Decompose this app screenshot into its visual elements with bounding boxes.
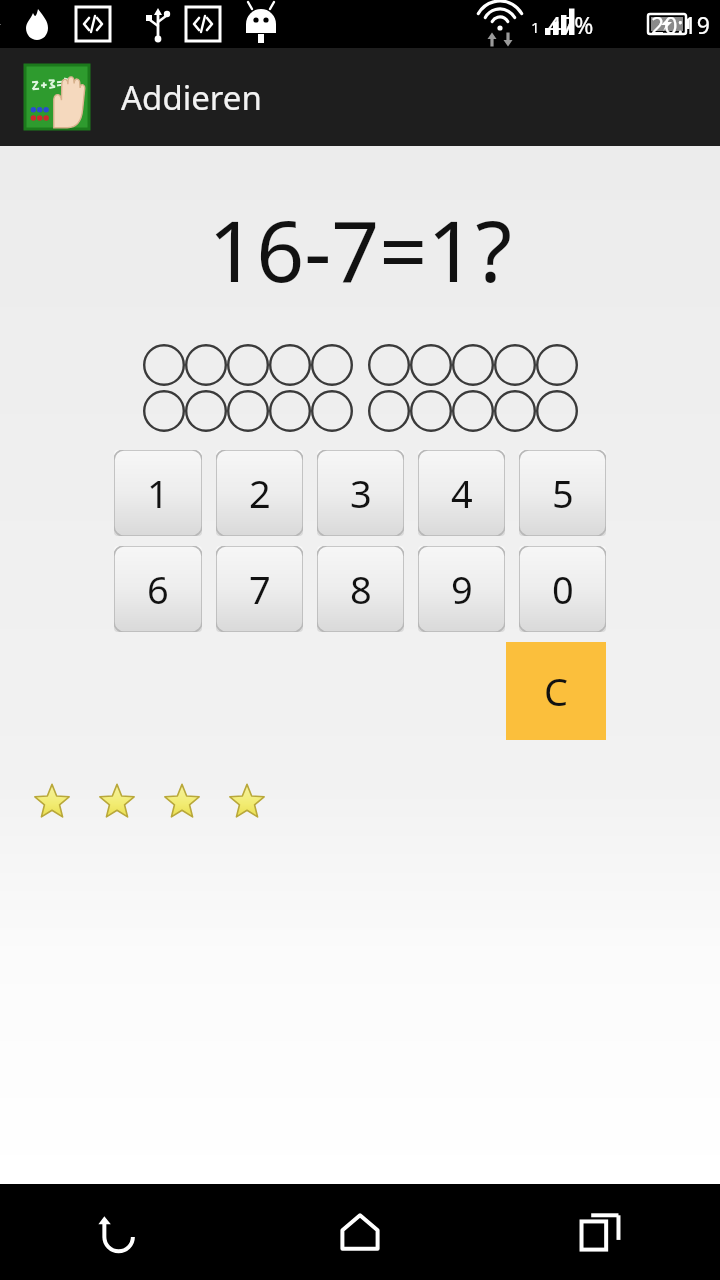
staticText: 1: [531, 17, 540, 37]
button[interactable]: 2: [216, 450, 303, 536]
button[interactable]: 5: [519, 450, 606, 536]
button[interactable]: Back: [0, 1184, 240, 1280]
button[interactable]: Home: [240, 1184, 480, 1280]
staticText: 0: [552, 563, 574, 615]
staticText: 16-7=1?: [208, 192, 512, 306]
staticText: 8: [350, 563, 372, 615]
button[interactable]: 8: [317, 546, 404, 632]
staticText: 5: [552, 467, 574, 519]
button[interactable]: 7: [216, 546, 303, 632]
staticText: 20:19: [651, 9, 710, 40]
staticText: Addieren: [121, 75, 262, 120]
staticText: C: [544, 665, 569, 717]
staticText: 2: [249, 467, 271, 519]
button[interactable]: 0: [519, 546, 606, 632]
button[interactable]: 1: [114, 450, 202, 536]
button[interactable]: 3: [317, 450, 404, 536]
button[interactable]: 6: [114, 546, 202, 632]
button[interactable]: 9: [418, 546, 505, 632]
staticText: 3: [350, 467, 372, 519]
staticText: 7: [249, 563, 271, 615]
staticText: 4: [451, 467, 473, 519]
button[interactable]: Recent apps: [480, 1184, 720, 1280]
button[interactable]: 4: [418, 450, 505, 536]
staticText: 1: [147, 467, 169, 519]
staticText: 9: [451, 563, 473, 615]
staticText: 47%: [548, 9, 594, 40]
staticText: 6: [147, 563, 169, 615]
button[interactable]: C: [506, 642, 606, 740]
